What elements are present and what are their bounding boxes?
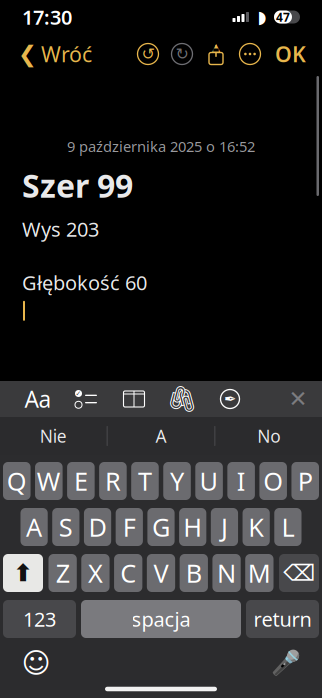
button[interactable]: Q [3,462,31,500]
button[interactable]: OK [267,34,314,74]
staticText: L [281,510,294,544]
staticText: F [123,510,136,544]
staticText: ↺ [141,45,154,63]
button[interactable]: A [20,508,48,546]
staticText: S [59,510,73,544]
staticText: ✒ [224,391,236,407]
button[interactable]: Udostępnij [199,34,233,74]
button[interactable]: C [114,554,142,592]
button[interactable]: return [246,600,319,638]
button[interactable]: G [147,508,175,546]
staticText: ◗ [257,7,266,27]
button[interactable]: Załącznik [158,381,206,417]
staticText: Wróć [41,40,92,68]
button[interactable]: 123 [3,600,76,638]
button[interactable]: F [116,508,143,546]
button[interactable]: Tabela [110,381,158,417]
staticText: Wys 203 [22,216,99,242]
button[interactable]: L [274,508,301,546]
staticText: return [253,606,311,632]
staticText: ❮ [18,41,37,67]
staticText: 🎤 [271,649,301,677]
button[interactable]: T [131,462,159,500]
staticText: 9 października 2025 o 16:52 [67,136,255,156]
button[interactable]: Format [14,381,62,417]
button[interactable]: W [35,462,63,500]
button[interactable]: O [259,462,287,500]
staticText: K [248,510,264,544]
button[interactable]: Emoji [14,646,58,680]
button[interactable]: Shift [3,554,43,592]
button[interactable]: Nie [0,417,107,455]
staticText: No [257,424,280,447]
button[interactable]: Więcej [233,34,267,74]
button[interactable]: V [147,554,175,592]
button[interactable]: M [245,554,273,592]
button[interactable]: D [84,508,111,546]
staticText: 123 [23,606,56,632]
staticText: J [221,510,228,544]
staticText: ⌫ [283,560,315,586]
button[interactable]: Ponów [165,34,199,74]
staticText: 🖇 [166,384,198,413]
button[interactable]: Cofnij [131,34,165,74]
button[interactable]: H [179,508,206,546]
staticText: ↻ [175,45,188,63]
button[interactable]: P [291,462,319,500]
staticText: ▲ [212,41,220,53]
staticText: T [138,464,152,498]
button[interactable]: N [212,554,241,592]
staticText: O [263,464,283,498]
button[interactable]: spacja [81,600,241,638]
staticText: OK [275,40,306,68]
button[interactable]: U [195,462,223,500]
staticText: ✕ [288,386,307,412]
staticText: Aa [24,384,51,414]
staticText: H [183,510,202,544]
button[interactable]: Lista kontrolna [62,381,110,417]
staticText: X [88,556,103,590]
button[interactable]: Usuń [279,554,319,592]
staticText: U [200,464,219,498]
button[interactable]: X [81,554,110,592]
button[interactable]: I [227,462,255,500]
staticText: B [186,556,202,590]
staticText: G [152,510,170,544]
staticText: P [298,464,313,498]
staticText: A [26,510,42,544]
button[interactable]: ❮ [8,34,102,74]
staticText: Y [170,464,184,498]
staticText: N [217,556,236,590]
staticText: Z [56,556,70,590]
staticText: W [37,464,61,498]
staticText: A [155,424,166,447]
button[interactable]: K [243,508,270,546]
staticText: Szer 99 [22,164,133,207]
staticText: V [153,556,168,590]
button[interactable]: Z [48,554,77,592]
staticText: 17:30 [22,4,72,30]
button[interactable]: Zamknij [278,381,318,417]
staticText: C [120,556,136,590]
button[interactable]: No [215,417,322,455]
button[interactable]: R [99,462,127,500]
staticText: R [105,464,121,498]
staticText: Głębokość 60 [22,269,147,296]
staticText: I [237,464,246,498]
staticText: ☺ [21,647,50,679]
button[interactable]: E [67,462,95,500]
staticText: spacja [131,606,190,632]
staticText: E [74,464,88,498]
button[interactable]: Y [163,462,191,500]
button[interactable]: J [211,508,238,546]
button[interactable]: Dyktowanie [264,646,308,680]
staticText: ⬆ [13,559,33,587]
button[interactable]: B [180,554,208,592]
staticText: D [89,510,107,544]
staticText: Nie [40,424,67,447]
staticText: ✓ [75,390,81,397]
button[interactable]: S [52,508,79,546]
staticText: M [248,556,271,590]
button[interactable]: Oznaczenia [206,381,254,417]
button[interactable]: A [108,417,214,455]
